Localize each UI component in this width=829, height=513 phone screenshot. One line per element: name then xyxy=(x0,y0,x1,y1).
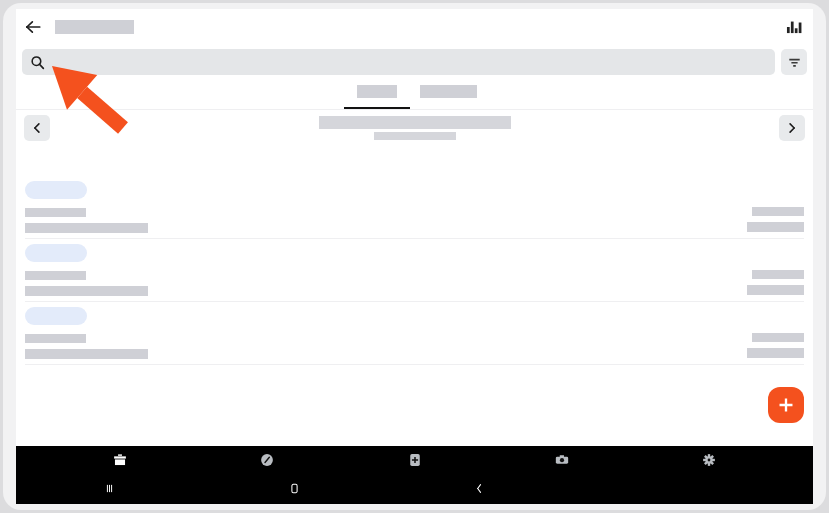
button[interactable] xyxy=(410,79,486,109)
button[interactable]: Back xyxy=(387,473,572,504)
button[interactable]: Add xyxy=(372,446,458,473)
button[interactable]: Add xyxy=(768,387,804,423)
button[interactable]: Dashboard xyxy=(224,446,310,473)
button[interactable]: Next xyxy=(779,115,805,141)
button[interactable] xyxy=(16,176,813,238)
button[interactable]: Recents xyxy=(16,473,202,504)
button[interactable] xyxy=(344,79,410,109)
button[interactable]: Jobs xyxy=(77,446,163,473)
button[interactable] xyxy=(22,49,775,75)
button[interactable]: Filter xyxy=(781,49,807,75)
button[interactable]: Home xyxy=(202,473,387,504)
button[interactable] xyxy=(16,239,813,301)
button[interactable]: Back xyxy=(16,10,50,44)
button[interactable]: Statistics xyxy=(777,10,811,44)
button[interactable] xyxy=(16,302,813,364)
button[interactable]: Settings xyxy=(666,446,752,473)
button[interactable]: Camera xyxy=(519,446,605,473)
button[interactable]: Previous xyxy=(24,115,50,141)
